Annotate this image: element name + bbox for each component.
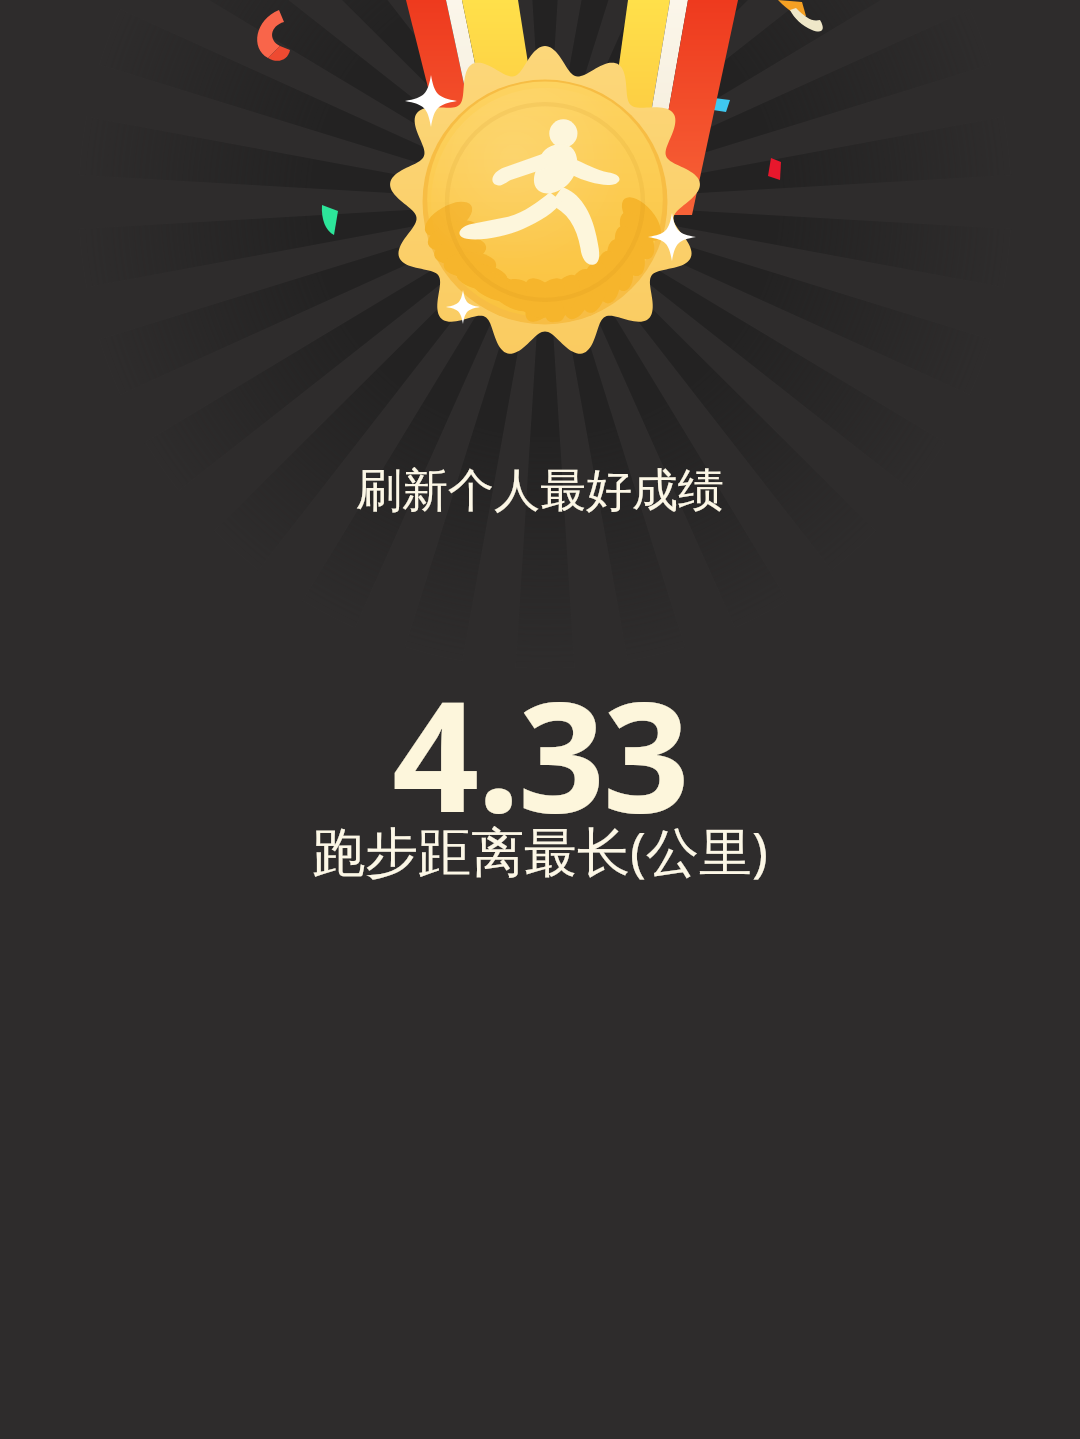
button[interactable]: New personal best achievement	[0, 0, 1080, 1439]
